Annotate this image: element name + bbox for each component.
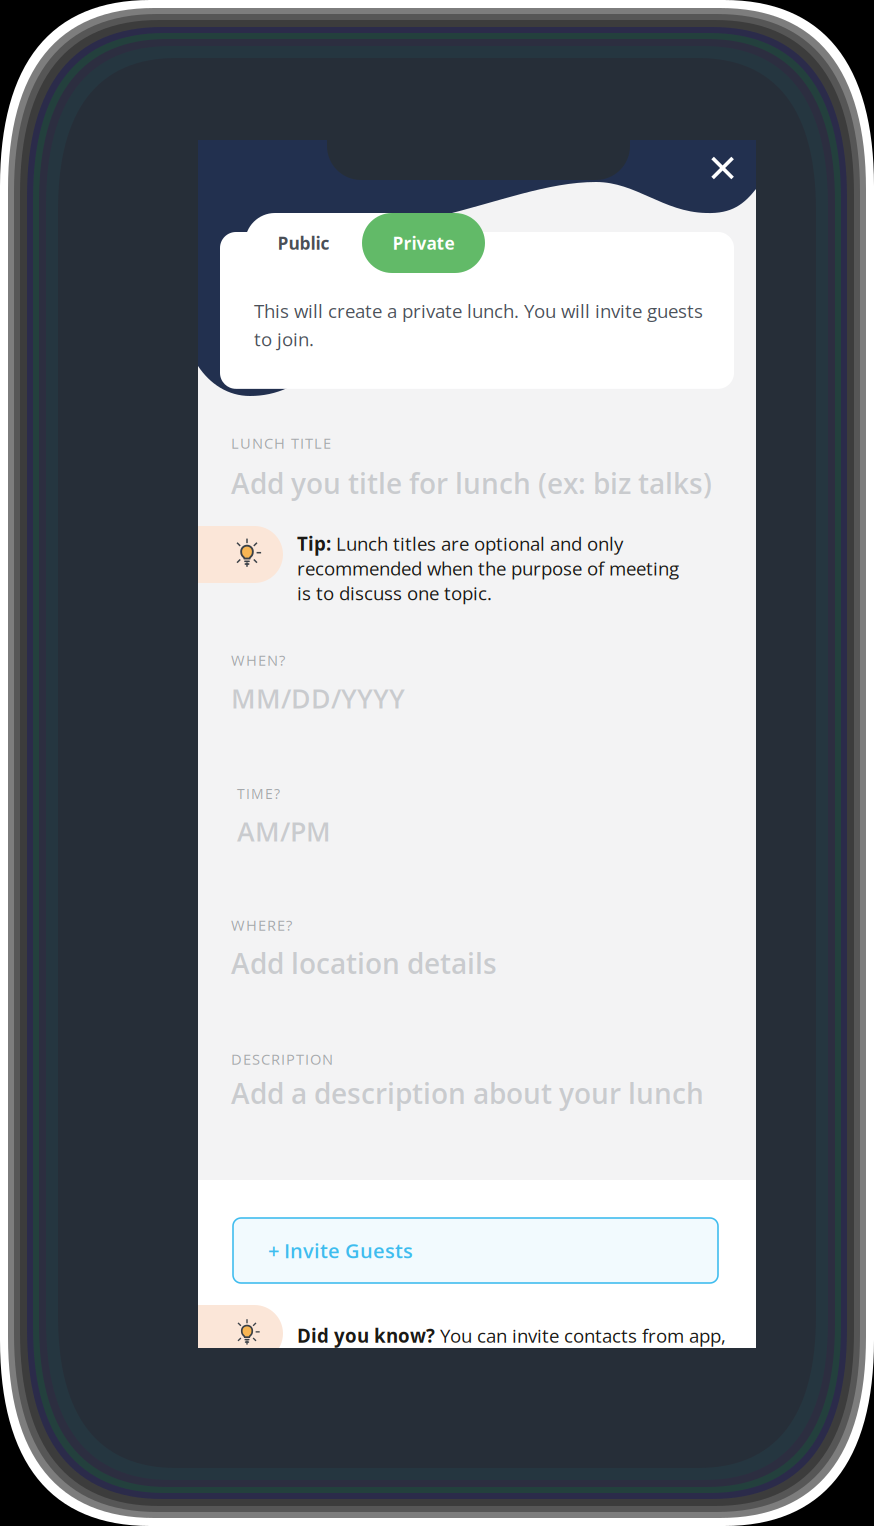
staticText: Add location details — [231, 944, 497, 982]
button[interactable]: Public — [245, 213, 362, 273]
button[interactable]: + Invite Guests — [233, 1218, 718, 1283]
staticText: TIME? — [237, 784, 280, 803]
staticText: Tip: Lunch titles are optional and only … — [297, 531, 679, 605]
staticText: DESCRIPTION — [231, 1049, 333, 1069]
staticText: WHERE? — [231, 915, 292, 935]
staticText: Public — [277, 231, 329, 255]
staticText: Did you know? You can invite contacts fr… — [297, 1323, 726, 1348]
button[interactable]: Close — [698, 143, 748, 193]
staticText: WHEN? — [231, 650, 285, 670]
staticText: LUNCH TITLE — [231, 433, 331, 453]
staticText: Add a description about your lunch — [231, 1074, 704, 1112]
staticText: This will create a private lunch. You wi… — [254, 298, 703, 352]
staticText: Private — [392, 231, 454, 255]
button[interactable]: Private — [362, 213, 485, 273]
staticText: Add you title for lunch (ex: biz talks) — [231, 464, 712, 502]
staticText: + Invite Guests — [268, 1237, 413, 1264]
staticText: MM/DD/YYYY — [231, 680, 405, 716]
staticText: AM/PM — [237, 813, 331, 849]
